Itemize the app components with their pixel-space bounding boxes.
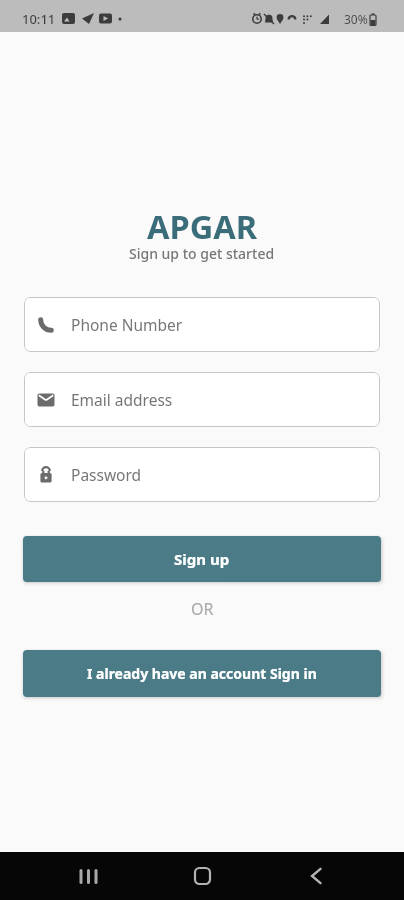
staticText: OR [191, 598, 214, 620]
button[interactable]: Sign up [23, 536, 381, 582]
button[interactable]: I already have an account Sign in [23, 650, 381, 697]
button[interactable]: Email address [24, 372, 380, 427]
button[interactable]: Phone Number [24, 297, 380, 352]
button[interactable]: Password [24, 447, 380, 502]
staticText: Sign up to get started [129, 244, 275, 263]
button[interactable] [182, 852, 222, 900]
staticText: 30% [344, 11, 368, 27]
staticText: Password [71, 464, 142, 485]
staticText: I already have an account Sign in [87, 664, 317, 683]
staticText: Sign up [174, 549, 230, 569]
button[interactable] [68, 852, 108, 900]
button[interactable] [296, 852, 336, 900]
staticText: Email address [71, 389, 173, 410]
staticText: 10:11 [22, 10, 56, 28]
staticText: APGAR [147, 204, 258, 248]
staticText: Phone Number [71, 314, 183, 335]
